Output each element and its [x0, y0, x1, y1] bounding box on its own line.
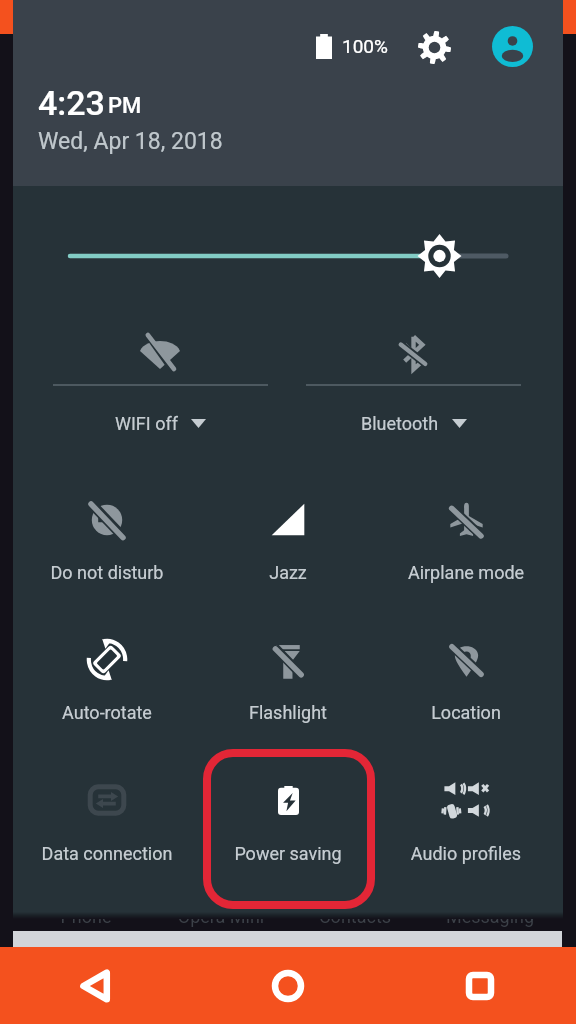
staticText: Contacts: [285, 906, 425, 927]
staticText: 100%: [342, 35, 388, 57]
staticText: Auto-rotate: [15, 702, 199, 723]
staticText: Flashlight: [196, 702, 380, 723]
button[interactable]: Do not disturb: [15, 475, 199, 590]
button[interactable]: Auto-rotate: [15, 614, 199, 729]
button[interactable]: Location: [374, 615, 558, 730]
staticText: Messaging: [420, 906, 560, 927]
staticText: Location: [374, 702, 558, 723]
staticText: 4:23: [38, 83, 105, 123]
staticText: Wed, Apr 18, 2018: [38, 128, 223, 155]
staticText: Opera Mini: [151, 906, 291, 927]
button[interactable]: Recents: [384, 947, 576, 1024]
button[interactable]: Bluetooth: [306, 320, 521, 442]
button[interactable]: Airplane mode: [374, 474, 558, 589]
button[interactable]: Brightness: [50, 228, 526, 284]
button[interactable]: Data connection: [15, 755, 199, 870]
staticText: Power saving: [196, 843, 380, 864]
staticText: WIFI off: [115, 413, 178, 434]
button[interactable]: Power saving: [196, 755, 380, 870]
button[interactable]: WIFI off: [53, 320, 268, 442]
staticText: Bluetooth: [361, 413, 439, 434]
staticText: Phone: [16, 906, 156, 927]
staticText: Jazz: [196, 562, 380, 583]
staticText: Do not disturb: [15, 562, 199, 583]
staticText: Airplane mode: [374, 562, 558, 583]
button[interactable]: Home: [192, 947, 384, 1024]
button[interactable]: Audio profiles: [374, 755, 558, 870]
button[interactable]: Flashlight: [196, 616, 380, 731]
button[interactable]: User account: [492, 26, 533, 67]
button[interactable]: Jazz: [196, 474, 380, 589]
staticText: Audio profiles: [374, 843, 558, 864]
button[interactable]: Settings: [412, 25, 457, 70]
staticText: PM: [108, 93, 142, 119]
staticText: Data connection: [15, 843, 199, 864]
button[interactable]: Back: [0, 947, 192, 1024]
